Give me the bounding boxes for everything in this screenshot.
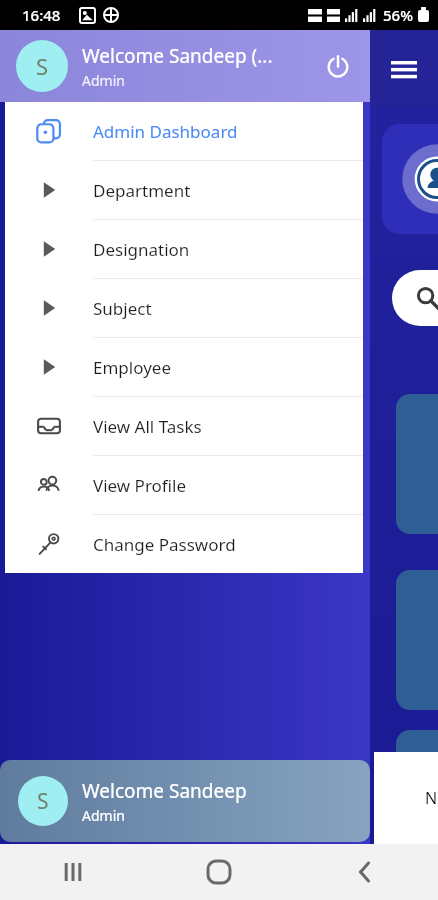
button[interactable]: View Profile [5, 456, 363, 514]
button[interactable]: Change Password [5, 515, 363, 573]
staticText: S [37, 787, 49, 816]
button[interactable]: Home [193, 846, 245, 898]
staticText: Employee [93, 356, 171, 379]
staticText: Admin Dashboard [93, 120, 238, 143]
staticText: 56% [383, 5, 413, 25]
button[interactable]: Back [339, 846, 391, 898]
button[interactable]: Open navigation menu [386, 52, 422, 88]
button[interactable]: Profile [382, 124, 438, 234]
staticText: View Profile [93, 474, 187, 497]
button[interactable]: S [0, 30, 370, 102]
button[interactable]: Logout [316, 44, 360, 88]
staticText: S [36, 51, 49, 81]
staticText: View All Tasks [93, 415, 202, 438]
staticText: Department [93, 179, 191, 202]
button[interactable]: Subject [5, 279, 363, 337]
button[interactable]: Card 1 [396, 394, 438, 534]
button[interactable]: Card 2 [396, 570, 438, 710]
button[interactable]: Recent apps [47, 846, 99, 898]
button[interactable]: View All Tasks [5, 397, 363, 455]
staticText: Designation [93, 238, 190, 261]
button[interactable]: S [0, 760, 370, 842]
staticText: 16:48 [22, 5, 61, 25]
button[interactable]: Admin Dashboard [5, 102, 363, 160]
staticText: Admin [82, 71, 125, 90]
staticText: Welcome Sandeep [82, 778, 247, 804]
staticText: NI [425, 787, 438, 809]
staticText: Subject [93, 297, 152, 320]
button[interactable]: Designation [5, 220, 363, 278]
staticText: Change Password [93, 533, 236, 556]
button[interactable]: Employee [5, 338, 363, 396]
button[interactable]: Department [5, 161, 363, 219]
button[interactable]: Search [392, 270, 438, 326]
button[interactable]: Card 3 [396, 730, 438, 850]
staticText: Admin [82, 806, 125, 825]
staticText: Welcome Sandeep (... [82, 43, 273, 69]
